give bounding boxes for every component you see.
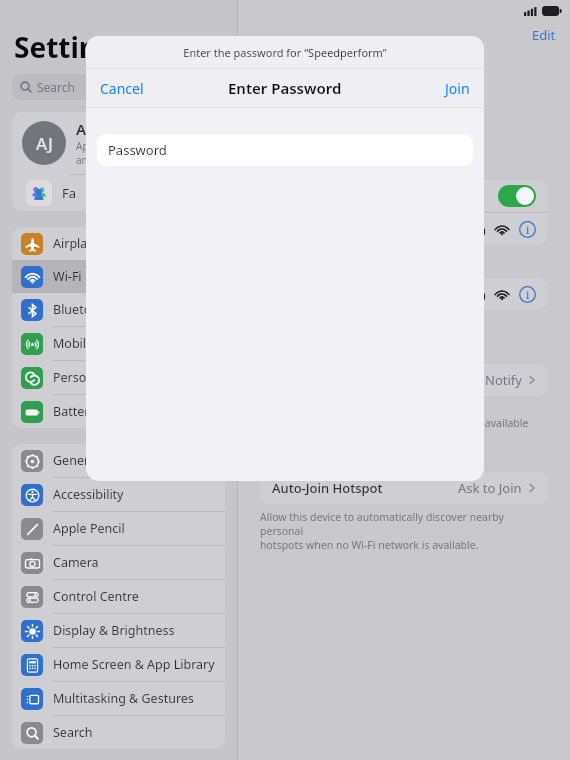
button[interactable]: Control Centre <box>12 580 225 613</box>
button[interactable]: Search <box>12 716 225 749</box>
staticText: Home Screen & App Library <box>53 656 215 673</box>
button[interactable]: Fa <box>12 175 225 211</box>
button[interactable]: Wi-Fi on <box>260 180 548 212</box>
button[interactable]: Mobile Data <box>12 327 225 360</box>
staticText: Auto-Join Hotspot <box>272 479 383 497</box>
button[interactable]: More info <box>260 213 548 245</box>
button[interactable]: Join <box>431 73 484 104</box>
button[interactable]: Search <box>12 74 225 100</box>
button[interactable]: Password <box>97 134 473 166</box>
staticText: Search <box>37 79 75 95</box>
staticText: Multitasking & Gestures <box>53 690 194 707</box>
button[interactable]: General <box>12 444 225 477</box>
staticText: Mobile Data <box>53 335 125 352</box>
staticText: Personal Hotspot <box>53 369 155 386</box>
staticText: Ask to Join <box>458 479 522 497</box>
other: More info <box>519 286 536 303</box>
staticText: Accessibility <box>53 486 124 503</box>
button[interactable]: Wi-Fi <box>12 260 225 293</box>
button[interactable]: More info <box>260 278 548 310</box>
button[interactable]: Apple Pencil <box>12 512 225 545</box>
button[interactable]: Cancel <box>86 73 158 104</box>
button[interactable]: AJ <box>12 112 225 174</box>
button[interactable]: Edit <box>518 22 570 48</box>
staticText: Cancel <box>100 79 144 98</box>
staticText: Password <box>108 141 167 159</box>
staticText: General <box>53 452 100 469</box>
staticText: Ap <box>76 139 89 153</box>
staticText: Wi-Fi <box>53 268 82 285</box>
other: Wi-Fi on <box>498 185 536 207</box>
staticText: Battery <box>53 403 96 420</box>
button[interactable]: Personal Hotspot <box>12 361 225 394</box>
staticText: Enter Password <box>228 78 342 98</box>
button[interactable]: Accessibility <box>12 478 225 511</box>
staticText: hotspots when no Wi-Fi network is availa… <box>260 538 479 552</box>
staticText: Display & Brightness <box>53 622 175 639</box>
button[interactable]: Bluetooth <box>12 293 225 326</box>
button[interactable]: Notify <box>260 364 548 396</box>
button[interactable]: Display & Brightness <box>12 614 225 647</box>
staticText: Camera <box>53 554 99 571</box>
staticText: Enter the password for “Speedperform” <box>183 45 387 60</box>
staticText: Fa <box>62 184 77 202</box>
staticText: Search <box>53 724 93 741</box>
staticText: networks are available, you will be noti… <box>260 416 529 430</box>
staticText: Control Centre <box>53 588 139 605</box>
button[interactable]: Multitasking & Gestures <box>12 682 225 715</box>
other: More info <box>519 221 536 238</box>
staticText: Edit <box>532 26 556 44</box>
staticText: Airplane Mode <box>53 235 139 252</box>
staticText: AJ <box>36 132 53 155</box>
button[interactable]: Battery <box>12 395 225 428</box>
staticText: Notify <box>485 371 522 389</box>
staticText: Bluetooth <box>53 301 112 318</box>
staticText: Allow this device to automatically disco… <box>260 510 548 538</box>
staticText: Apple Pencil <box>53 520 125 537</box>
staticText: A <box>76 119 87 139</box>
staticText: i <box>526 223 530 237</box>
button[interactable]: Airplane Mode <box>12 227 225 260</box>
staticText: Settings <box>14 28 129 66</box>
button[interactable]: Home Screen & App Library <box>12 648 225 681</box>
staticText: an <box>76 153 88 167</box>
button[interactable]: Camera <box>12 546 225 579</box>
staticText: i <box>526 288 530 302</box>
button[interactable]: Auto-Join Hotspot <box>260 472 548 504</box>
staticText: Join <box>445 79 470 98</box>
